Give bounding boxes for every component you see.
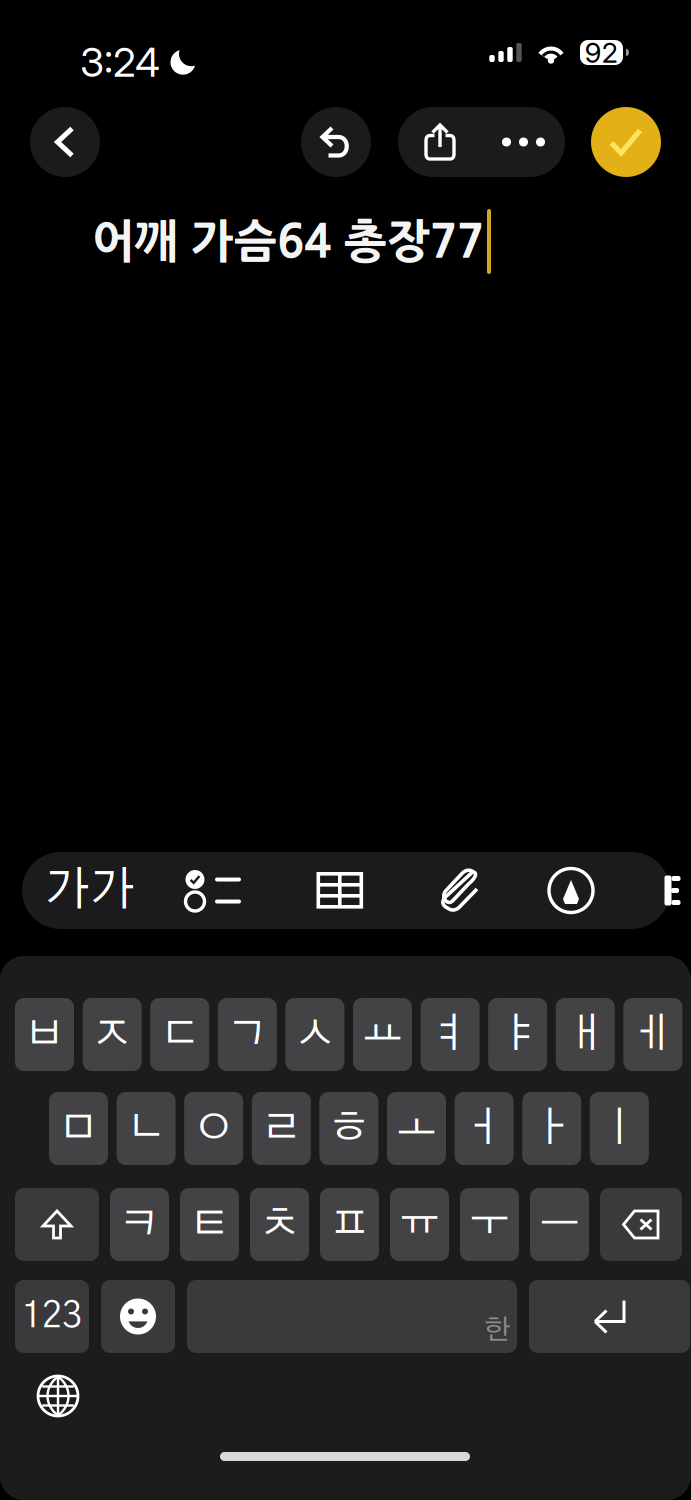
button[interactable]: Checklist [166,852,262,929]
staticText: ㅛ [362,1014,403,1055]
button[interactable]: ㅊ [250,1188,309,1261]
staticText: ㅓ [464,1108,505,1149]
staticText: ㅜ [469,1204,510,1245]
staticText: ㄷ [159,1014,200,1055]
button[interactable]: ㅛ [353,998,412,1071]
button[interactable]: Undo [297,107,375,177]
staticText: ㅔ [632,1014,673,1055]
button[interactable]: Shift [15,1188,99,1261]
staticText: ㅐ [565,1014,606,1055]
staticText: ㅑ [497,1014,538,1055]
button[interactable]: ㅋ [110,1188,169,1261]
button[interactable]: Return [529,1280,690,1353]
staticText: ㅂ [24,1014,65,1055]
staticText: ㅏ [531,1108,572,1149]
staticText: ㅍ [329,1204,370,1245]
button[interactable]: Switch keyboard [28,1366,88,1426]
button[interactable]: ㄷ [150,998,209,1071]
button[interactable]: ㅑ [488,998,547,1071]
button[interactable]: ㅏ [522,1092,581,1165]
button[interactable]: ㅔ [623,998,682,1071]
button[interactable]: Back [26,107,104,177]
staticText: ㅗ [396,1108,437,1149]
staticText: 한 [484,1316,511,1344]
staticText: ㅋ [119,1204,160,1245]
button[interactable]: ㅎ [319,1092,378,1165]
button[interactable]: More [482,107,565,177]
staticText: 92 [584,36,618,69]
button[interactable]: ㅓ [455,1092,514,1165]
button[interactable]: Emoji [101,1280,175,1353]
button[interactable]: ㅣ [590,1092,649,1165]
button[interactable]: ㅍ [320,1188,379,1261]
button[interactable]: ㅡ [530,1188,589,1261]
button[interactable]: Attach [412,852,508,929]
staticText: ㅎ [328,1108,369,1149]
staticText: 어깨 가슴64 총장77 [92,219,484,264]
staticText: ㅣ [599,1108,640,1149]
button[interactable]: ㅂ [15,998,74,1071]
button[interactable]: Space [187,1280,517,1353]
button[interactable]: Table [292,852,388,929]
button[interactable]: 가가 [42,852,138,929]
button[interactable]: Delete [600,1188,682,1261]
button[interactable]: ㅇ [184,1092,243,1165]
button[interactable]: ㅜ [460,1188,519,1261]
button[interactable]: ㅅ [285,998,344,1071]
staticText: ㄱ [227,1014,268,1055]
button[interactable]: ㅐ [556,998,615,1071]
staticText: 3:24 [80,38,160,86]
button[interactable]: ㅕ [421,998,480,1071]
staticText: ㅈ [92,1014,133,1055]
button[interactable]: ㄹ [252,1092,311,1165]
staticText: ㅁ [58,1108,99,1149]
staticText: ㄹ [261,1108,302,1149]
button[interactable]: Share [398,107,482,177]
staticText: ㅇ [193,1108,234,1149]
staticText: 가가 [45,867,135,914]
button[interactable]: ㅌ [180,1188,239,1261]
button[interactable]: ㄱ [218,998,277,1071]
staticText: ㅊ [259,1204,300,1245]
button[interactable]: ㅗ [387,1092,446,1165]
button[interactable]: Done [586,107,666,177]
staticText: ㅕ [430,1014,471,1055]
button[interactable]: 123 [15,1280,89,1353]
button[interactable]: ㅈ [83,998,142,1071]
staticText: ㄴ [126,1108,167,1149]
button[interactable]: ㅁ [49,1092,108,1165]
staticText: ㅌ [189,1204,230,1245]
button[interactable]: ㄴ [117,1092,176,1165]
button[interactable]: ㅠ [390,1188,449,1261]
button[interactable]: Markup [523,852,619,929]
staticText: ㅠ [399,1204,440,1245]
staticText: ㅅ [294,1014,335,1055]
staticText: 123 [22,1298,82,1334]
staticText: ㅡ [539,1204,580,1245]
